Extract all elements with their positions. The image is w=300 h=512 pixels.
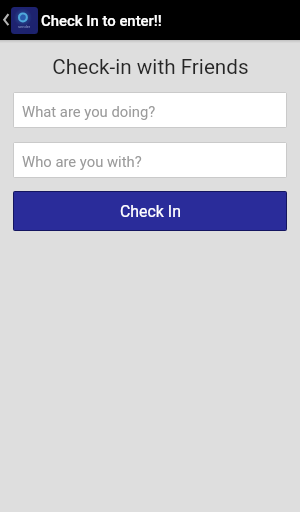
button[interactable]: Sender app icon bbox=[11, 7, 38, 34]
button[interactable]: Who are you with? bbox=[14, 143, 286, 177]
staticText: Who are you with? bbox=[22, 153, 142, 170]
staticText: Check-in with Friends bbox=[52, 55, 249, 79]
staticText: What are you doing? bbox=[22, 103, 156, 120]
staticText: Check In bbox=[120, 202, 181, 221]
button[interactable]: What are you doing? bbox=[14, 93, 286, 127]
button[interactable]: Check In bbox=[14, 192, 286, 230]
staticText: sender bbox=[18, 24, 31, 29]
staticText: Check In to enter!! bbox=[41, 12, 162, 29]
button[interactable]: Back bbox=[0, 10, 11, 30]
